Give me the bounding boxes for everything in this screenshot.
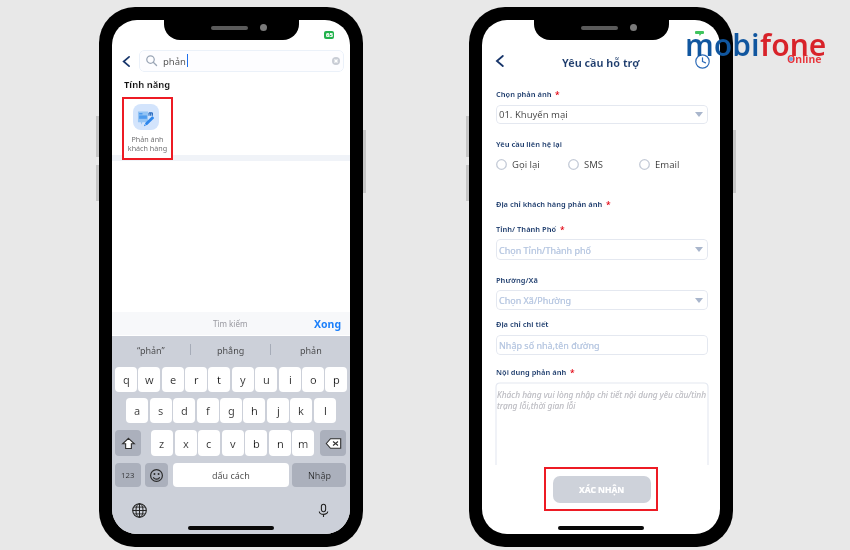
button[interactable]: r bbox=[185, 367, 207, 392]
staticText: l bbox=[324, 403, 327, 418]
staticText: dấu cách bbox=[212, 469, 250, 481]
staticText: Gọi lại bbox=[512, 158, 540, 171]
staticText: n bbox=[277, 436, 284, 451]
button[interactable]: History bbox=[694, 53, 710, 69]
staticText: Nhập số nhà,tên đường bbox=[499, 339, 600, 351]
button[interactable]: phẳng bbox=[191, 336, 270, 363]
button[interactable]: y bbox=[232, 367, 254, 392]
button[interactable]: phản bbox=[271, 336, 350, 363]
staticText: “phản” bbox=[137, 344, 165, 356]
button[interactable]: Chọn Xã/Phường bbox=[496, 290, 708, 310]
staticText: z bbox=[159, 436, 165, 451]
staticText: SMS bbox=[584, 158, 604, 171]
staticText: d bbox=[181, 403, 188, 418]
staticText: g bbox=[228, 403, 235, 418]
button[interactable]: Emoji bbox=[145, 463, 168, 487]
button[interactable]: m bbox=[292, 430, 314, 456]
staticText: 01. Khuyến mại bbox=[499, 108, 568, 121]
staticText: r bbox=[194, 372, 199, 387]
staticText: * bbox=[570, 367, 575, 379]
staticText: XÁC NHẬN bbox=[579, 484, 625, 496]
button[interactable]: Gọi lại bbox=[496, 157, 540, 171]
button[interactable]: Nhập số nhà,tên đường bbox=[496, 335, 708, 355]
staticText: f bbox=[206, 403, 210, 418]
staticText: u bbox=[263, 372, 270, 387]
button[interactable]: “phản” bbox=[112, 336, 190, 363]
button[interactable]: g bbox=[220, 398, 242, 423]
button[interactable]: q bbox=[115, 367, 137, 392]
button[interactable]: x bbox=[175, 430, 197, 456]
button[interactable]: Dictate bbox=[315, 502, 331, 518]
staticText: Địa chỉ chi tiết bbox=[496, 319, 549, 329]
button[interactable]: Xong bbox=[314, 317, 342, 331]
button[interactable]: Back bbox=[117, 52, 135, 70]
staticText: t bbox=[217, 372, 221, 387]
button[interactable]: u bbox=[255, 367, 277, 392]
button[interactable]: Nhập bbox=[292, 463, 346, 487]
button[interactable]: phản bbox=[139, 50, 344, 72]
staticText: Chọn Tỉnh/Thành phố bbox=[499, 244, 592, 256]
staticText: y bbox=[240, 372, 246, 387]
button[interactable]: c bbox=[198, 430, 220, 456]
button[interactable]: a bbox=[126, 398, 148, 423]
button[interactable]: p bbox=[325, 367, 347, 392]
button[interactable]: Phản ánh khách hàng bbox=[122, 97, 173, 160]
staticText: j bbox=[277, 403, 280, 418]
button[interactable]: dấu cách bbox=[173, 463, 289, 487]
button[interactable]: z bbox=[151, 430, 173, 456]
staticText: Email bbox=[655, 158, 680, 171]
staticText: phản bbox=[300, 344, 322, 356]
button[interactable]: s bbox=[150, 398, 172, 423]
button[interactable]: Email bbox=[639, 157, 680, 171]
button[interactable]: l bbox=[314, 398, 336, 423]
staticText: w bbox=[145, 372, 154, 387]
staticText: Tính năng bbox=[124, 78, 171, 91]
staticText: Yêu cầu hỗ trợ bbox=[562, 55, 640, 70]
staticText: Tỉnh/ Thành Phố bbox=[496, 224, 557, 234]
button[interactable]: 01. Khuyến mại bbox=[496, 105, 708, 124]
button[interactable]: XÁC NHẬN bbox=[553, 476, 651, 503]
staticText: k bbox=[298, 403, 304, 418]
button[interactable]: Backspace bbox=[320, 430, 346, 456]
button[interactable]: k bbox=[290, 398, 312, 423]
staticText: Chọn phản ánh bbox=[496, 89, 552, 99]
button[interactable]: f bbox=[197, 398, 219, 423]
button[interactable]: v bbox=[222, 430, 244, 456]
button[interactable]: t bbox=[208, 367, 230, 392]
staticText: * bbox=[606, 199, 611, 211]
staticText: 123 bbox=[121, 470, 135, 481]
button[interactable]: SMS bbox=[568, 157, 604, 171]
staticText: fone bbox=[760, 24, 827, 65]
staticText: * bbox=[560, 224, 565, 236]
button[interactable]: j bbox=[267, 398, 289, 423]
button[interactable]: d bbox=[173, 398, 195, 423]
staticText: Nội dung phản ánh bbox=[496, 367, 567, 377]
button[interactable]: Shift bbox=[115, 430, 141, 456]
button[interactable]: e bbox=[162, 367, 184, 392]
staticText: phẳng bbox=[217, 344, 245, 356]
staticText: v bbox=[230, 436, 236, 451]
button[interactable]: Khách hàng vui lòng nhập chi tiết nội du… bbox=[496, 383, 708, 465]
button[interactable]: i bbox=[279, 367, 301, 392]
button[interactable]: b bbox=[245, 430, 267, 456]
staticText: Địa chỉ khách hàng phản ánh bbox=[496, 199, 603, 209]
button[interactable]: Change keyboard bbox=[131, 502, 147, 518]
staticText: c bbox=[206, 436, 212, 451]
staticText: b bbox=[253, 436, 260, 451]
button[interactable]: Back bbox=[491, 52, 509, 70]
staticText: Phường/Xã bbox=[496, 275, 538, 285]
staticText: Khách hàng vui lòng nhập chi tiết nội du… bbox=[497, 389, 707, 411]
staticText: e bbox=[170, 372, 177, 387]
button[interactable]: 123 bbox=[115, 463, 141, 487]
button[interactable]: o bbox=[302, 367, 324, 392]
button[interactable]: n bbox=[269, 430, 291, 456]
button[interactable]: Chọn Tỉnh/Thành phố bbox=[496, 239, 708, 260]
staticText: s bbox=[158, 403, 164, 418]
staticText: p bbox=[333, 372, 340, 387]
button[interactable]: h bbox=[243, 398, 265, 423]
staticText: Nhập bbox=[308, 469, 331, 481]
staticText: x bbox=[183, 436, 189, 451]
staticText: Tìm kiếm bbox=[213, 318, 248, 329]
staticText: phản bbox=[163, 55, 186, 68]
button[interactable]: w bbox=[138, 367, 160, 392]
